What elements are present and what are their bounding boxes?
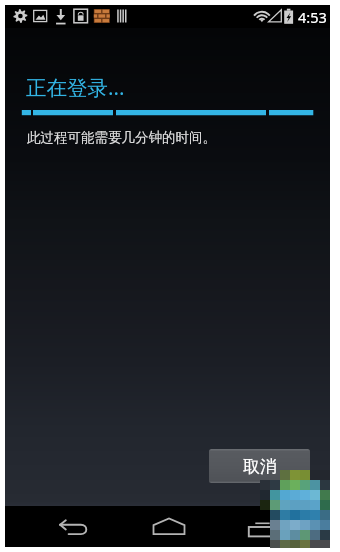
staticText: 正在登录... <box>26 73 125 101</box>
staticText: 此过程可能需要几分钟的时间。 <box>27 129 216 146</box>
button[interactable]: Back <box>48 506 98 547</box>
staticText: 4:53 <box>298 7 327 27</box>
staticText: 取消 <box>243 456 277 477</box>
button[interactable]: 取消 <box>209 449 310 483</box>
button[interactable]: Recents <box>235 506 285 547</box>
button[interactable]: Home <box>143 506 193 547</box>
